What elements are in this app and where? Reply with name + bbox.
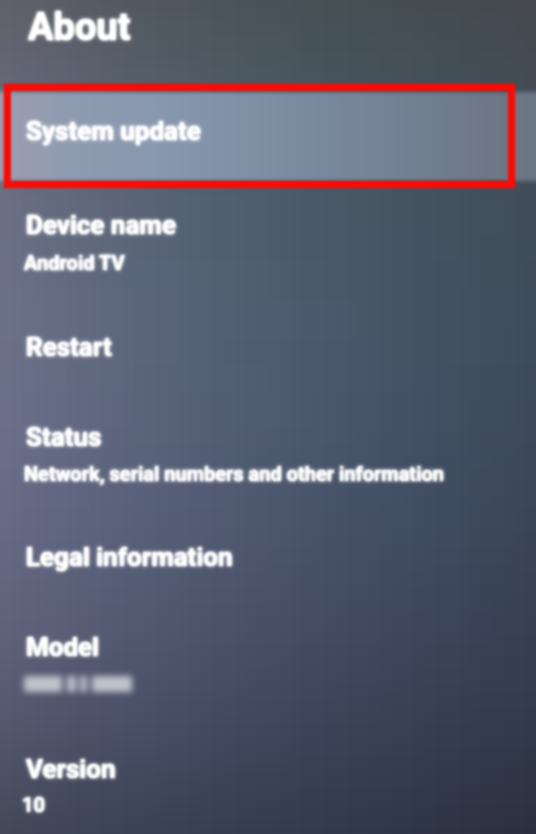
staticText: Model: [26, 632, 99, 662]
staticText: Network, serial numbers and other inform…: [24, 462, 444, 485]
button[interactable]: Status, Network, serial numbers and othe…: [0, 365, 536, 500]
button[interactable]: Model: [0, 590, 536, 710]
staticText: Android TV: [24, 251, 125, 274]
staticText: Status: [26, 422, 102, 452]
staticText: System update: [26, 116, 201, 146]
staticText: Legal information: [26, 542, 233, 572]
staticText: 10: [22, 793, 45, 816]
staticText: Restart: [26, 332, 112, 362]
staticText: Restart: [26, 332, 112, 362]
staticText: Legal information: [26, 542, 233, 572]
staticText: About: [28, 5, 131, 50]
staticText: Version: [26, 754, 116, 784]
button[interactable]: Device name, Android TV: [0, 181, 536, 275]
button[interactable]: Version, 10: [0, 710, 536, 834]
staticText: Model: [26, 632, 99, 662]
staticText: Device name: [26, 210, 176, 240]
staticText: 10: [22, 793, 45, 816]
staticText: Android TV: [24, 251, 125, 274]
button[interactable]: Restart: [0, 275, 536, 365]
staticText: Network, serial numbers and other inform…: [24, 462, 444, 485]
staticText: Version: [26, 754, 116, 784]
staticText: System update: [26, 116, 201, 146]
button[interactable]: Legal information: [0, 500, 536, 590]
staticText: Device name: [26, 210, 176, 240]
staticText: About: [28, 5, 131, 50]
button[interactable]: System update: [0, 92, 536, 181]
button[interactable]: [0, 92, 536, 181]
staticText: Status: [26, 422, 102, 452]
